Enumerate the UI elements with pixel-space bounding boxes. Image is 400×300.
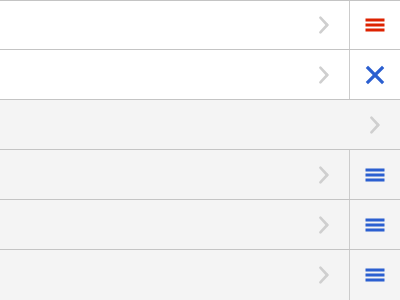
button[interactable]: Reorder — [350, 200, 400, 249]
button[interactable]: Reorder — [350, 250, 400, 300]
button[interactable]: Menu — [350, 1, 400, 49]
button[interactable]: Open item — [0, 200, 400, 249]
button[interactable]: Open item — [0, 50, 400, 99]
button[interactable]: Close — [350, 50, 400, 99]
button[interactable]: Open item — [0, 150, 400, 199]
button[interactable]: Reorder — [350, 150, 400, 199]
button[interactable]: Open item — [0, 250, 400, 300]
button[interactable]: Open item — [0, 1, 400, 49]
